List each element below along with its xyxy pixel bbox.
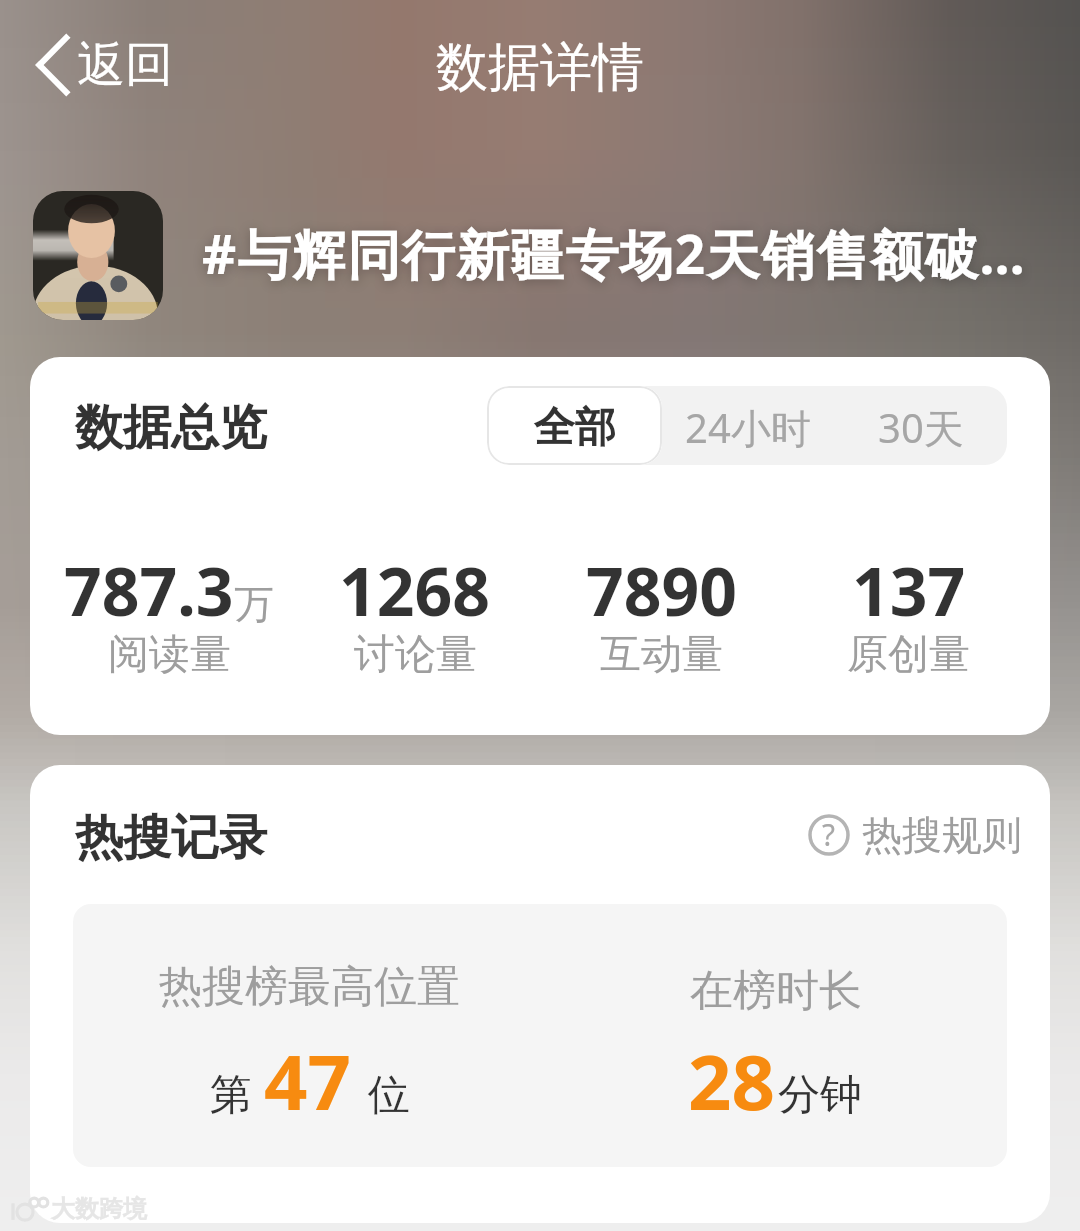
staticText: 47 [264, 1029, 351, 1133]
staticText: 28 [688, 1029, 775, 1133]
staticText: #与辉同行新疆专场2天销售额破… [202, 217, 1027, 289]
staticText: 数据详情 [436, 35, 644, 101]
staticText: 全部 [534, 402, 616, 454]
staticText: 在榜时长 [690, 964, 862, 1018]
staticText: 阅读量 [108, 629, 231, 681]
staticText: 137 [852, 545, 966, 635]
staticText: 787.3 [64, 545, 234, 635]
staticText: 24小时 [685, 400, 811, 455]
button[interactable]: Topic cover image [0, 191, 1080, 320]
staticText: 大数跨境 [51, 1194, 147, 1224]
staticText: 讨论量 [354, 629, 477, 681]
staticText: 分钟 [778, 1069, 862, 1122]
staticText: ? [822, 814, 836, 855]
staticText: 互动量 [600, 629, 723, 681]
staticText: 数据总览 [75, 398, 267, 458]
other: Back [34, 36, 68, 94]
staticText: 原创量 [847, 629, 970, 681]
button[interactable]: 24小时 [662, 386, 834, 465]
other: Topic cover image [33, 191, 163, 320]
button[interactable]: 30天 [834, 386, 1007, 465]
button[interactable]: 全部 [487, 386, 662, 465]
staticText: 返回 [77, 35, 173, 95]
staticText: 热搜记录 [75, 808, 267, 868]
staticText: 第 [210, 1069, 252, 1122]
staticText: 位 [368, 1069, 410, 1122]
staticText: 7890 [586, 545, 738, 635]
staticText: 热搜榜最高位置 [159, 960, 460, 1014]
staticText: 热搜规则 [862, 810, 1022, 860]
button[interactable]: Back [34, 35, 173, 95]
staticText: 万 [234, 579, 274, 629]
staticText: 1268 [339, 545, 491, 635]
staticText: 30天 [878, 400, 964, 455]
button[interactable]: ? [808, 810, 1022, 860]
